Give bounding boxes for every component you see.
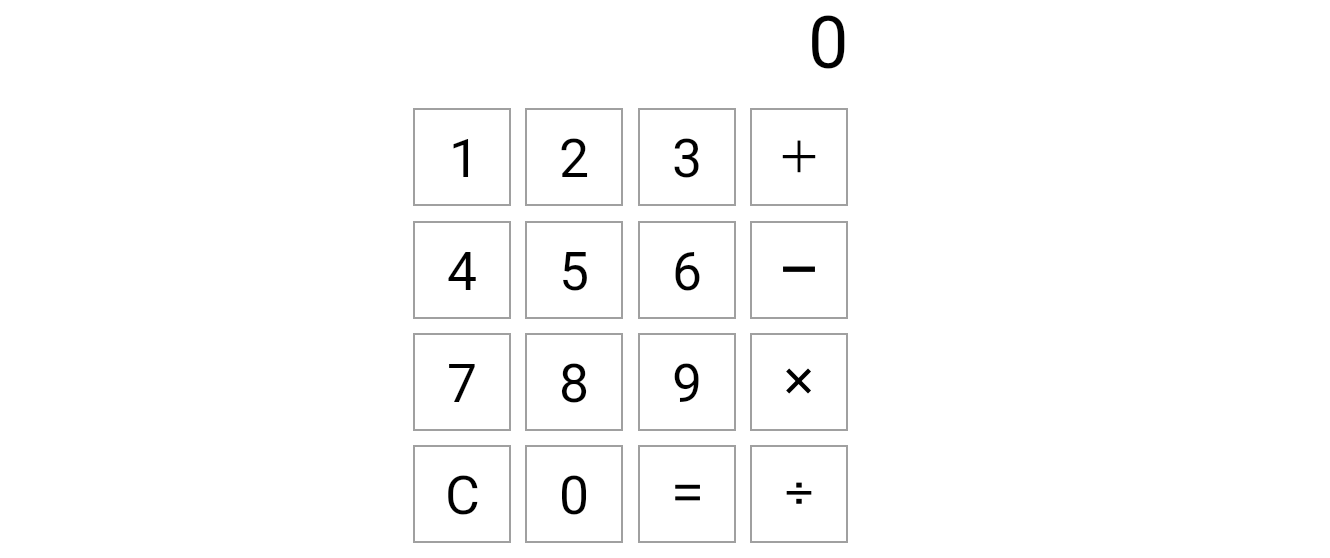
staticText: 0 <box>808 1 849 85</box>
button[interactable] <box>750 108 848 206</box>
staticText: 7 <box>447 352 478 415</box>
staticText: 0 <box>559 464 590 527</box>
button[interactable]: 3 <box>638 108 736 206</box>
button[interactable]: 0 <box>525 445 623 543</box>
staticText: 5 <box>559 240 590 303</box>
button[interactable] <box>750 445 848 543</box>
staticText: 6 <box>672 240 703 303</box>
staticText: 4 <box>447 240 478 303</box>
button[interactable]: 7 <box>413 333 511 431</box>
button[interactable]: C <box>413 445 511 543</box>
staticText: 9 <box>672 352 703 415</box>
staticText: 8 <box>559 352 590 415</box>
button[interactable]: 6 <box>638 221 736 319</box>
staticText: 2 <box>559 127 590 190</box>
staticText: C <box>445 464 480 527</box>
staticText: 3 <box>672 127 703 190</box>
button[interactable] <box>750 221 848 319</box>
button[interactable]: 4 <box>413 221 511 319</box>
button[interactable] <box>638 445 736 543</box>
button[interactable]: 2 <box>525 108 623 206</box>
button[interactable]: 8 <box>525 333 623 431</box>
button[interactable] <box>750 333 848 431</box>
button[interactable]: 1 <box>413 108 511 206</box>
staticText: 1 <box>449 127 480 190</box>
button[interactable]: 5 <box>525 221 623 319</box>
button[interactable]: 9 <box>638 333 736 431</box>
